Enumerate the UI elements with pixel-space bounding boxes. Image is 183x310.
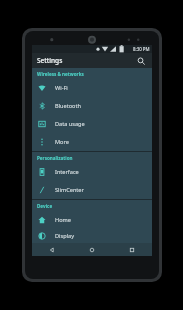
button[interactable]: Home bbox=[32, 211, 152, 229]
button[interactable]: Display bbox=[32, 229, 152, 243]
staticText: Data usage bbox=[55, 120, 85, 128]
staticText: SlimCenter bbox=[55, 186, 84, 194]
staticText: Display bbox=[55, 232, 75, 240]
button[interactable]: More bbox=[32, 133, 152, 151]
staticText: Bluetooth bbox=[55, 102, 81, 110]
staticText: Wi-Fi bbox=[55, 84, 68, 92]
button[interactable]: Recents bbox=[112, 243, 152, 256]
button[interactable]: Home bbox=[72, 243, 112, 256]
staticText: Personalization bbox=[37, 155, 73, 161]
staticText: Wireless & networks bbox=[37, 71, 84, 77]
staticText: 8:30 PM bbox=[133, 46, 150, 52]
staticText: Home bbox=[55, 216, 71, 224]
staticText: Settings bbox=[37, 56, 135, 65]
staticText: Device bbox=[37, 203, 53, 209]
button[interactable]: Interface bbox=[32, 163, 152, 181]
staticText: More bbox=[55, 138, 69, 146]
button[interactable]: Bluetooth bbox=[32, 97, 152, 115]
button[interactable]: SlimCenter bbox=[32, 181, 152, 199]
button[interactable]: Data usage bbox=[32, 115, 152, 133]
button[interactable]: Search bbox=[135, 55, 147, 67]
staticText: Interface bbox=[55, 168, 79, 176]
button[interactable]: Wi-Fi bbox=[32, 79, 152, 97]
button[interactable]: Back bbox=[32, 243, 72, 256]
